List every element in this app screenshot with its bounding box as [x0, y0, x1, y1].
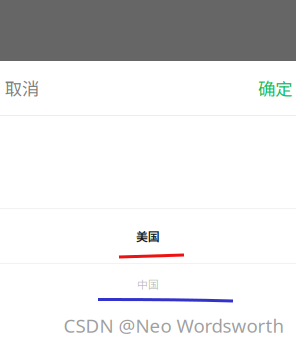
- button[interactable]: 美国: [0, 209, 296, 263]
- button[interactable]: 中国: [0, 264, 296, 304]
- staticText: 取消: [5, 75, 39, 101]
- staticText: CSDN @Neo Wordsworth: [63, 313, 284, 338]
- button[interactable]: 确定: [246, 61, 296, 115]
- staticText: 确定: [258, 75, 292, 101]
- staticText: 美国: [136, 227, 160, 245]
- button[interactable]: 取消: [0, 61, 51, 115]
- staticText: 中国: [137, 276, 159, 292]
